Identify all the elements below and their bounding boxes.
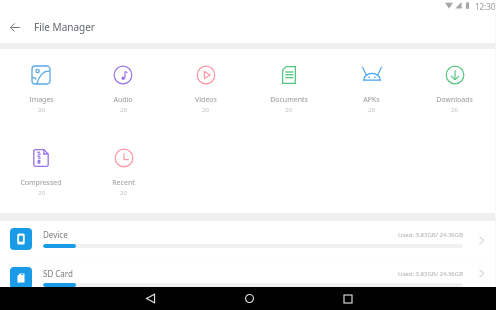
button[interactable]: Audio — [82, 65, 164, 114]
staticText: Compressed — [20, 178, 62, 188]
button[interactable]: Images — [0, 65, 82, 114]
staticText: File Manager — [34, 20, 95, 34]
staticText: 20 — [38, 106, 45, 114]
staticText: APKs — [363, 95, 380, 105]
button[interactable]: APKs — [330, 65, 413, 114]
staticText: Videos — [195, 95, 217, 105]
button[interactable]: Videos — [164, 65, 247, 114]
staticText: 12:30 — [475, 1, 496, 12]
button[interactable]: Home — [219, 287, 279, 310]
button[interactable]: Device — [0, 221, 496, 259]
button[interactable]: Documents — [247, 65, 330, 114]
staticText: 20 — [285, 106, 292, 114]
staticText: Documents — [270, 95, 308, 105]
staticText: Used: 3.83GB/ 24.36GB — [398, 270, 464, 278]
staticText: Images — [29, 95, 54, 105]
button[interactable]: Downloads — [413, 65, 496, 114]
staticText: Downloads — [436, 95, 473, 105]
button[interactable]: Compressed — [0, 148, 82, 197]
staticText: 20 — [120, 189, 127, 197]
staticText: SD Card — [43, 268, 73, 279]
button[interactable]: Recents — [318, 287, 378, 310]
button[interactable]: Recent — [82, 148, 165, 197]
staticText: Device — [43, 229, 68, 240]
staticText: 20 — [38, 189, 45, 197]
staticText: 20 — [120, 106, 127, 114]
staticText: Audio — [113, 95, 133, 105]
button[interactable]: Back — [120, 287, 180, 310]
staticText: 20 — [202, 106, 209, 114]
button[interactable]: Back — [0, 13, 30, 43]
button[interactable]: SD Card — [0, 260, 496, 287]
staticText: 20 — [368, 106, 375, 114]
staticText: Used: 3.83GB/ 24.36GB — [398, 231, 464, 239]
staticText: 20 — [451, 106, 458, 114]
staticText: Recent — [112, 178, 135, 188]
